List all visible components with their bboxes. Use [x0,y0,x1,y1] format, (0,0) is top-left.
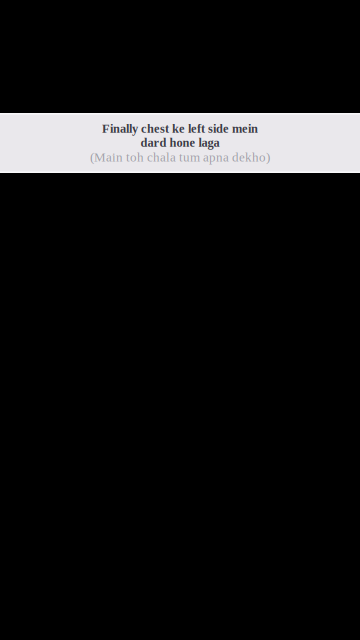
staticText: Finally chest ke left side mein [102,122,258,135]
staticText: dard hone laga [140,136,219,149]
staticText: (Main toh chala tum apna dekho) [90,150,270,164]
